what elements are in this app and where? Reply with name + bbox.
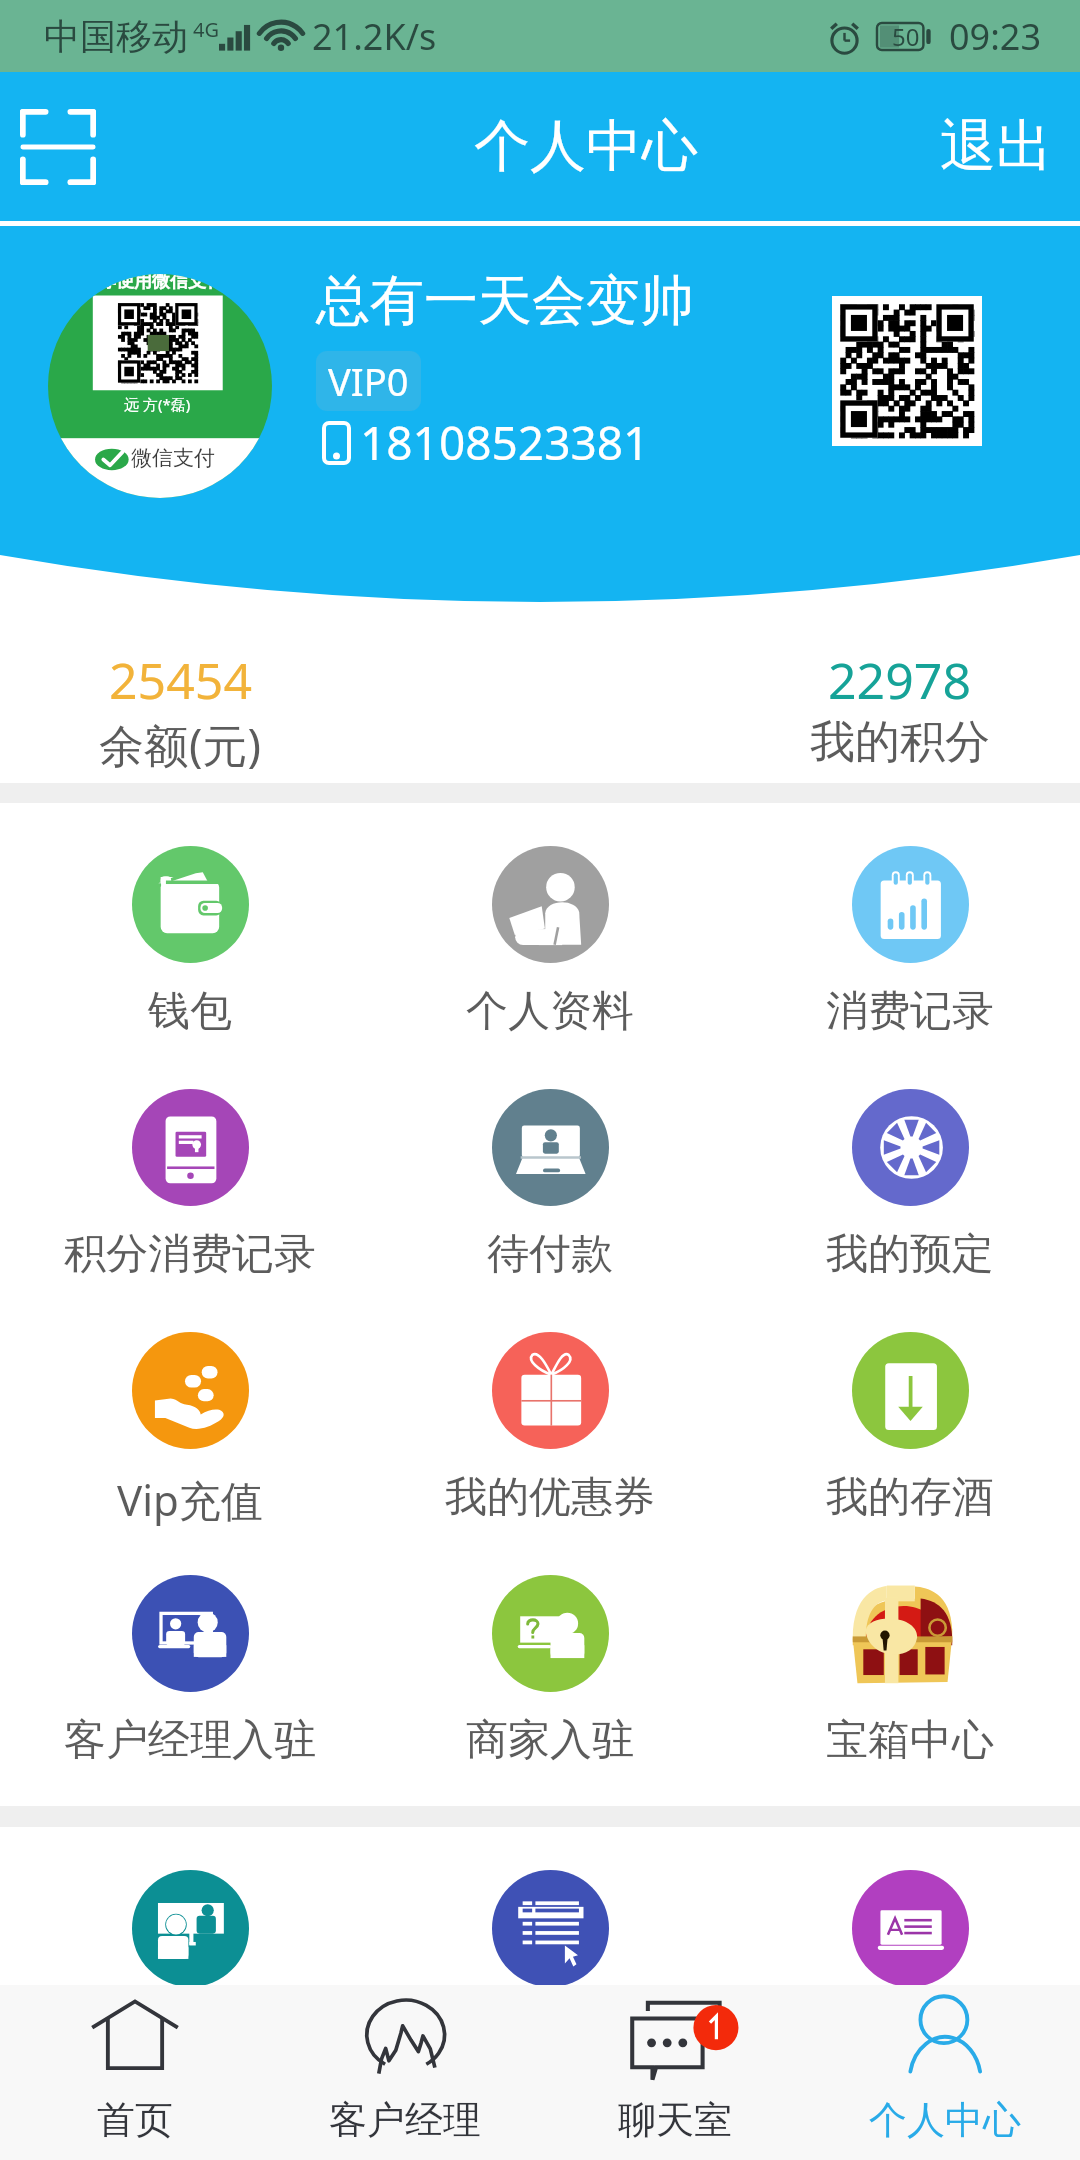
- staticText: 退出: [940, 111, 1052, 182]
- button[interactable]: Avatar: [48, 274, 272, 498]
- staticText: 09:23: [949, 12, 1042, 61]
- button[interactable]: 商家入驻: [370, 1532, 730, 1767]
- staticText: 聊天室: [618, 2096, 732, 2144]
- staticText: 25454: [109, 646, 252, 714]
- staticText: 钱包: [148, 985, 232, 1038]
- button[interactable]: 消费记录: [730, 803, 1080, 1038]
- staticText: 个人中心: [869, 2096, 1021, 2144]
- button[interactable]: 25454: [1, 602, 360, 775]
- staticText: 待付款: [487, 1228, 613, 1281]
- button[interactable]: 待付款: [370, 1046, 730, 1281]
- staticText: Vip充值: [117, 1471, 263, 1528]
- staticText: 总有一天会变帅: [316, 267, 694, 335]
- button[interactable]: Scan QR code: [10, 99, 106, 195]
- staticText: 我的优惠券: [445, 1471, 655, 1524]
- button[interactable]: 22978: [720, 602, 1079, 771]
- staticText: 消费记录: [826, 985, 994, 1038]
- button[interactable]: Documents: [370, 1827, 730, 1987]
- staticText: 首页: [97, 2096, 173, 2144]
- staticText: 4G: [193, 16, 219, 43]
- button[interactable]: 退出: [910, 87, 1080, 206]
- button[interactable]: 个人中心: [810, 1985, 1080, 2144]
- button[interactable]: 个人资料: [370, 803, 730, 1038]
- staticText: 22978: [828, 646, 971, 714]
- staticText: 积分消费记录: [64, 1228, 316, 1281]
- button[interactable]: 我的预定: [730, 1046, 1080, 1281]
- staticText: 客户经理: [329, 2096, 481, 2144]
- button[interactable]: 宝箱中心: [730, 1532, 1080, 1767]
- button[interactable]: 我的优惠券: [370, 1289, 730, 1524]
- staticText: 远 方(*磊): [124, 394, 191, 414]
- staticText: 余额(元): [99, 714, 262, 775]
- staticText: 商家入驻: [466, 1714, 634, 1767]
- button[interactable]: 客户经理入驻: [10, 1532, 370, 1767]
- staticText: 21.2K/s: [312, 12, 437, 61]
- staticText: 个人资料: [466, 985, 634, 1038]
- staticText: 中国移动: [44, 14, 188, 59]
- button[interactable]: 积分消费记录: [10, 1046, 370, 1281]
- button[interactable]: 我的存酒: [730, 1289, 1080, 1524]
- button[interactable]: 首页: [0, 1985, 270, 2144]
- staticText: 我的积分: [810, 714, 990, 771]
- staticText: 客户经理入驻: [64, 1714, 316, 1767]
- staticText: 18108523381: [360, 411, 650, 474]
- staticText: 我的存酒: [826, 1471, 994, 1524]
- staticText: 50: [892, 20, 920, 53]
- button[interactable]: Projector: [10, 1827, 370, 1987]
- button[interactable]: 钱包: [10, 803, 370, 1038]
- staticText: 个人中心: [474, 111, 698, 182]
- staticText: 宝箱中心: [826, 1714, 994, 1767]
- button[interactable]: 聊天室: [540, 1985, 810, 2144]
- staticText: 我的预定: [826, 1228, 994, 1281]
- button[interactable]: Card: [730, 1827, 1080, 1987]
- button[interactable]: 客户经理: [270, 1985, 540, 2144]
- staticText: 推荐使用微信支付: [80, 274, 224, 293]
- staticText: VIP0: [328, 355, 409, 407]
- button[interactable]: Vip充值: [10, 1289, 370, 1528]
- staticText: 微信支付: [131, 445, 215, 471]
